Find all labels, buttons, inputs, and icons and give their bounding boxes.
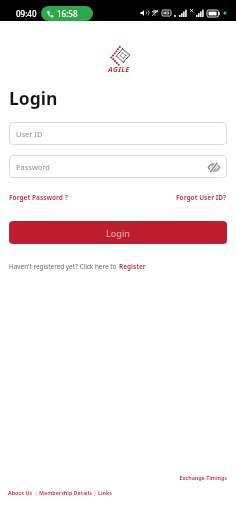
button[interactable]: Exchange Timings bbox=[170, 467, 236, 484]
button[interactable]: Forgot User ID? bbox=[176, 189, 227, 206]
staticText: Haven't registered yet? Click here to bbox=[9, 262, 119, 271]
button[interactable]: User ID bbox=[9, 122, 227, 145]
button[interactable]: About Us bbox=[8, 486, 33, 499]
staticText: Exchange Timings bbox=[179, 474, 227, 481]
staticText: Login bbox=[106, 227, 130, 239]
staticText: Membership Details bbox=[39, 489, 92, 496]
staticText: Password bbox=[16, 162, 50, 172]
button[interactable]: Membership Details bbox=[39, 486, 92, 499]
staticText: User ID bbox=[16, 129, 43, 139]
button[interactable]: Show password bbox=[206, 159, 222, 175]
staticText: | bbox=[92, 489, 98, 496]
staticText: 09:40 bbox=[16, 8, 37, 19]
staticText: Register bbox=[119, 262, 146, 271]
staticText: 16:58 bbox=[57, 8, 78, 19]
staticText: Forget Password ? bbox=[9, 193, 68, 202]
staticText: | bbox=[33, 489, 39, 496]
button[interactable]: Register bbox=[119, 258, 146, 275]
staticText: Login bbox=[9, 86, 58, 110]
button[interactable]: Password bbox=[9, 155, 227, 178]
staticText: AGILE bbox=[108, 64, 130, 74]
button[interactable]: Login bbox=[9, 221, 227, 244]
staticText: Forgot User ID? bbox=[176, 193, 227, 202]
staticText: About Us bbox=[8, 489, 33, 496]
button[interactable]: Forget Password ? bbox=[9, 189, 68, 206]
staticText: Links bbox=[98, 489, 112, 496]
button[interactable]: Links bbox=[98, 486, 112, 499]
